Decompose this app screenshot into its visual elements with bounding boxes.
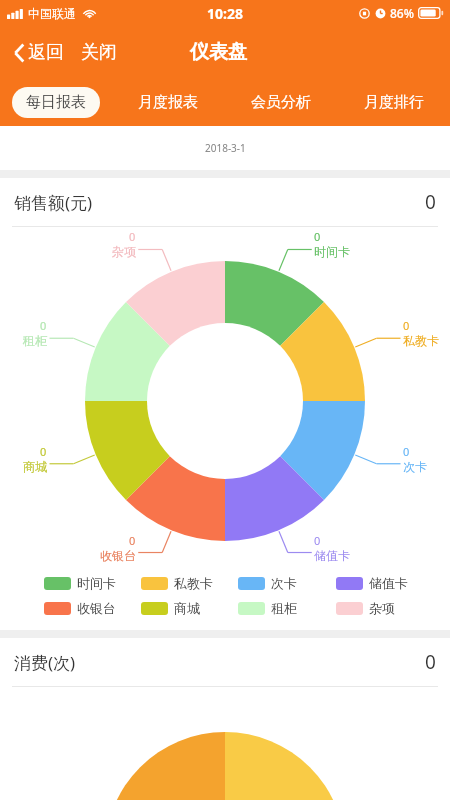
other: Back — [14, 43, 25, 63]
staticText: 私教卡 — [174, 575, 213, 591]
staticText: 0 — [314, 533, 321, 548]
button[interactable]: 收银台 — [44, 600, 141, 616]
button[interactable]: 杂项 — [336, 600, 434, 616]
staticText: 返回 — [28, 41, 64, 64]
staticText: 商城 — [174, 600, 200, 616]
staticText: 0 — [129, 533, 136, 548]
staticText: 月度报表 — [138, 93, 198, 112]
staticText: 时间卡 — [314, 244, 350, 259]
staticText: 时间卡 — [77, 575, 116, 591]
button[interactable]: 次卡 — [238, 575, 336, 591]
staticText: 储值卡 — [314, 548, 350, 563]
staticText: 次卡 — [271, 575, 297, 591]
button[interactable]: Back — [10, 35, 68, 70]
staticText: 0 — [129, 229, 136, 244]
staticText: 0 — [40, 444, 47, 459]
staticText: 次卡 — [403, 459, 427, 474]
staticText: 租柜 — [271, 600, 297, 616]
button[interactable]: 租柜 — [238, 600, 336, 616]
staticText: 仪表盘 — [190, 40, 247, 64]
staticText: 0 — [40, 318, 47, 333]
staticText: 杂项 — [369, 600, 395, 616]
staticText: 2018-3-1 — [205, 141, 246, 155]
staticText: 10:28 — [207, 4, 243, 23]
staticText: 0 — [425, 189, 436, 215]
button[interactable]: 月度报表 — [112, 78, 224, 126]
button[interactable]: 时间卡 — [44, 575, 141, 591]
staticText: 86% — [390, 5, 414, 21]
staticText: 0 — [425, 649, 436, 675]
staticText: 储值卡 — [369, 575, 408, 591]
staticText: 销售额(元) — [14, 191, 93, 214]
staticText: 租柜 — [23, 333, 47, 348]
staticText: 每日报表 — [26, 93, 86, 112]
staticText: 收银台 — [100, 548, 136, 563]
button[interactable]: 月度排行 — [337, 78, 450, 126]
button[interactable]: 私教卡 — [141, 575, 238, 591]
button[interactable]: 商城 — [141, 600, 238, 616]
staticText: 0 — [403, 444, 410, 459]
staticText: 商城 — [23, 459, 47, 474]
button[interactable]: 关闭 — [77, 35, 121, 70]
staticText: 0 — [403, 318, 410, 333]
staticText: 消费(次) — [14, 651, 76, 674]
button[interactable]: 每日报表 — [0, 78, 112, 126]
button[interactable]: 储值卡 — [336, 575, 434, 591]
staticText: 月度排行 — [364, 93, 424, 112]
staticText: 会员分析 — [251, 93, 311, 112]
staticText: 0 — [314, 229, 321, 244]
staticText: 关闭 — [81, 41, 117, 64]
staticText: 私教卡 — [403, 333, 439, 348]
staticText: 杂项 — [112, 244, 136, 259]
staticText: 中国联通 — [28, 6, 76, 21]
staticText: 收银台 — [77, 600, 116, 616]
button[interactable]: 会员分析 — [224, 78, 337, 126]
